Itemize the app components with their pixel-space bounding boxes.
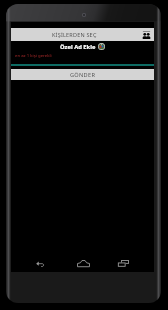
staticText: GÖNDER [70,71,96,79]
button[interactable]: KİŞİLERDEN SEÇ [11,28,154,41]
staticText: en az 1 kişi gerekli [15,52,52,58]
button[interactable]: Home [75,257,92,270]
button[interactable]: Contacts [141,29,152,40]
staticText: KİŞİLERDEN SEÇ [52,31,97,38]
button[interactable]: Recents [115,257,132,270]
button[interactable]: Özel Ad Ekle [11,41,154,52]
staticText: Özel Ad Ekle [60,43,96,51]
button[interactable]: Back [32,257,48,270]
button[interactable]: GÖNDER [11,69,154,80]
